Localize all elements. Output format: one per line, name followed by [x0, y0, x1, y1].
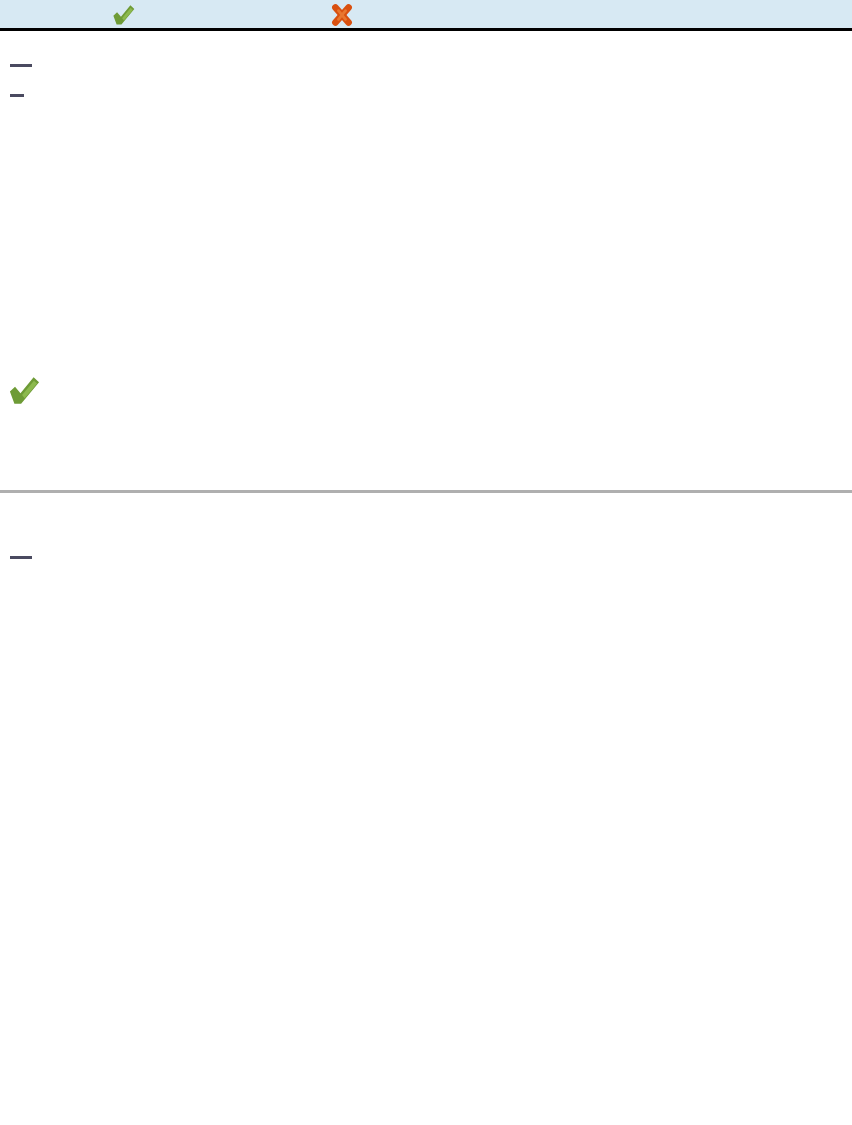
- button[interactable]: Failed: [331, 4, 353, 26]
- button[interactable]: Passed: [8, 374, 40, 406]
- button[interactable]: Passed: [112, 3, 135, 26]
